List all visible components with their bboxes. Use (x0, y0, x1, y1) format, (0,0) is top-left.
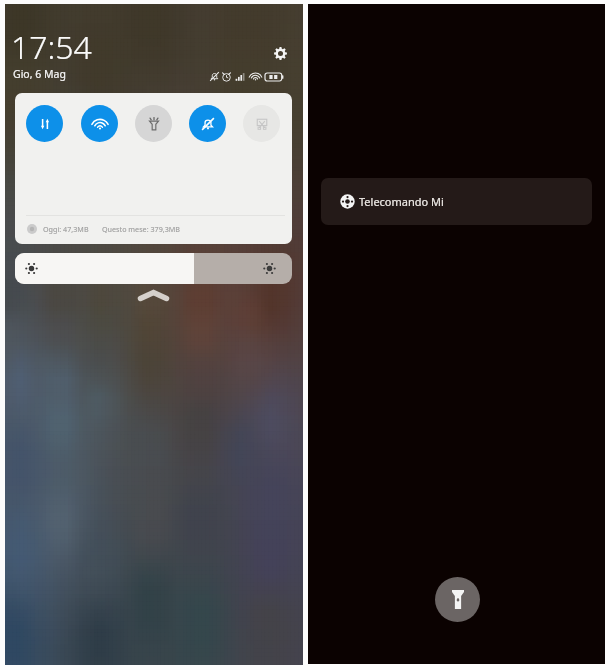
button[interactable]: Wi-Fi (81, 105, 118, 142)
button[interactable]: Flashlight (435, 577, 480, 622)
staticText: Gio, 6 Mag (13, 67, 66, 81)
button[interactable]: Cast (243, 105, 280, 142)
staticText: Questo mese: 379,3MB (102, 224, 180, 234)
staticText: Oggi: 47,3MB (43, 224, 89, 234)
button[interactable]: Flashlight (135, 105, 172, 142)
button[interactable]: Brightness (15, 253, 292, 284)
staticText: Telecomando Mi (359, 194, 444, 209)
button[interactable]: Telecomando Mi (321, 178, 592, 225)
button[interactable]: Silent (189, 105, 226, 142)
button[interactable]: Mobile data (26, 105, 63, 142)
button[interactable]: Settings (274, 47, 287, 60)
staticText: 17:54 (11, 25, 92, 69)
